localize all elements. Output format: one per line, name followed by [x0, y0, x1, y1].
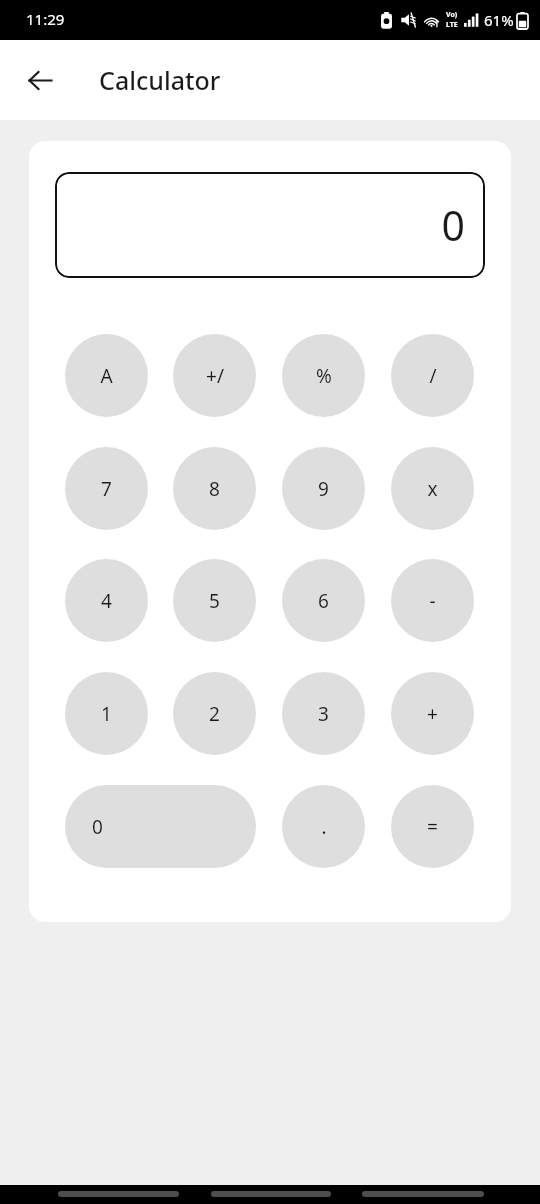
- staticText: 6: [318, 588, 329, 614]
- staticText: 61%: [484, 10, 514, 30]
- staticText: 5: [209, 588, 220, 614]
- button[interactable]: A: [65, 334, 148, 417]
- staticText: 0: [441, 197, 465, 253]
- button[interactable]: 9: [282, 447, 365, 530]
- button[interactable]: Back: [16, 56, 64, 104]
- button[interactable]: 8: [173, 447, 256, 530]
- button[interactable]: x: [391, 447, 474, 530]
- button[interactable]: =: [391, 785, 474, 868]
- staticText: %: [316, 363, 332, 389]
- staticText: Vo): [446, 10, 458, 20]
- staticText: /: [429, 363, 437, 389]
- staticText: 3: [318, 701, 329, 727]
- button[interactable]: 0: [65, 785, 256, 868]
- button[interactable]: 1: [65, 672, 148, 755]
- staticText: 8: [209, 476, 220, 502]
- button[interactable]: %: [282, 334, 365, 417]
- staticText: +: [427, 701, 438, 727]
- button[interactable]: 2: [173, 672, 256, 755]
- button[interactable]: 7: [65, 447, 148, 530]
- staticText: A: [100, 363, 113, 389]
- staticText: -: [429, 588, 436, 614]
- staticText: 2: [209, 701, 220, 727]
- button[interactable]: +/: [173, 334, 256, 417]
- staticText: 1: [101, 701, 112, 727]
- button[interactable]: 5: [173, 559, 256, 642]
- button[interactable]: +: [391, 672, 474, 755]
- staticText: Calculator: [99, 63, 221, 97]
- staticText: =: [427, 814, 438, 840]
- staticText: 4: [101, 588, 112, 614]
- button[interactable]: 4: [65, 559, 148, 642]
- staticText: LTE: [446, 20, 458, 30]
- button[interactable]: /: [391, 334, 474, 417]
- staticText: +/: [206, 363, 224, 389]
- button[interactable]: 3: [282, 672, 365, 755]
- button[interactable]: .: [282, 785, 365, 868]
- staticText: .: [321, 814, 327, 840]
- staticText: 0: [92, 814, 103, 840]
- button[interactable]: 0: [55, 172, 485, 278]
- button[interactable]: -: [391, 559, 474, 642]
- staticText: x: [427, 476, 438, 502]
- staticText: 9: [318, 476, 329, 502]
- button[interactable]: 6: [282, 559, 365, 642]
- staticText: 11:29: [26, 9, 65, 29]
- staticText: 7: [101, 476, 112, 502]
